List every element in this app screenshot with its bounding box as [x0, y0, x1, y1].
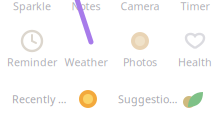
staticText: Sparkle — [13, 0, 51, 13]
button[interactable]: Suggestions — [112, 81, 212, 117]
staticText: Reminder — [7, 55, 57, 69]
button[interactable]: Timer — [180, 0, 209, 13]
button[interactable]: Recently Added — [6, 81, 106, 117]
staticText: Weather — [64, 55, 107, 69]
button[interactable]: Reminder — [7, 55, 57, 69]
staticText: Suggestions — [118, 92, 178, 106]
staticText: Notes — [71, 0, 100, 13]
button[interactable]: Notes — [71, 0, 100, 13]
button[interactable]: Photos — [127, 28, 153, 54]
staticText: Photos — [123, 55, 157, 69]
staticText: Health — [178, 55, 212, 69]
button[interactable]: Photos — [123, 55, 157, 69]
button[interactable]: Health — [178, 55, 212, 69]
button[interactable]: Camera — [120, 0, 159, 13]
button[interactable]: Reminder — [19, 28, 45, 54]
button[interactable]: Sparkle — [13, 0, 51, 13]
staticText: Timer — [180, 0, 209, 13]
staticText: Recently Added — [12, 92, 72, 106]
button[interactable]: Health — [182, 28, 208, 54]
button[interactable]: Weather — [64, 55, 107, 69]
staticText: Camera — [120, 0, 159, 13]
